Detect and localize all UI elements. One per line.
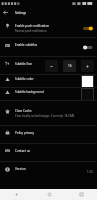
staticText: Clear locally cached images. Currently: … — [15, 114, 75, 118]
staticText: Contact us — [15, 149, 30, 153]
button[interactable]: Back — [0, 7, 11, 18]
button[interactable]: Policy privacy — [0, 126, 97, 144]
button[interactable]: Decrease — [45, 60, 58, 72]
staticText: Clear Cache — [15, 109, 32, 113]
staticText: Receive push notification — [15, 29, 47, 33]
button[interactable]: Subtitle background — [0, 88, 97, 101]
button[interactable]: Contact us — [0, 144, 97, 162]
staticText: Policy privacy — [15, 131, 34, 135]
button[interactable]: Enable push notification — [0, 18, 97, 38]
staticText: Subtitle background — [15, 90, 44, 94]
button[interactable]: Home — [33, 189, 65, 200]
staticText: Settings — [15, 11, 27, 15]
staticText: Version — [15, 167, 26, 171]
staticText: 1.0.0 — [87, 170, 93, 174]
staticText: Enable subtitles — [15, 43, 38, 47]
staticText: 16 — [68, 64, 72, 68]
button[interactable]: Recent apps — [65, 189, 97, 200]
button[interactable]: Subtitle Size — [0, 57, 97, 75]
button[interactable]: Back — [0, 189, 33, 200]
button[interactable]: Subtitle color — [0, 75, 97, 88]
button[interactable]: Toggle off — [83, 43, 97, 52]
staticText: Subtitle color — [15, 77, 34, 81]
button[interactable]: Toggle on — [83, 24, 97, 33]
button[interactable]: Version — [0, 162, 97, 181]
button[interactable]: Enable subtitles — [0, 38, 97, 57]
staticText: Subtitle Size — [15, 62, 33, 66]
button[interactable]: Clear Cache — [0, 101, 97, 126]
button[interactable]: Increase — [81, 60, 94, 72]
staticText: Enable push notification — [15, 24, 50, 28]
